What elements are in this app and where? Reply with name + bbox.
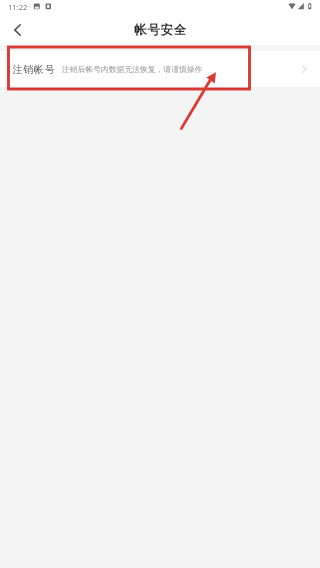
staticText: 帐号安全: [134, 22, 187, 38]
button[interactable]: 注销帐号: [0, 51, 320, 87]
staticText: 11:22: [8, 2, 28, 12]
button[interactable]: Back: [0, 14, 35, 45]
staticText: 注销帐号: [12, 63, 55, 76]
staticText: 注销后帐号内数据无法恢复，请谨慎操作: [62, 64, 203, 74]
